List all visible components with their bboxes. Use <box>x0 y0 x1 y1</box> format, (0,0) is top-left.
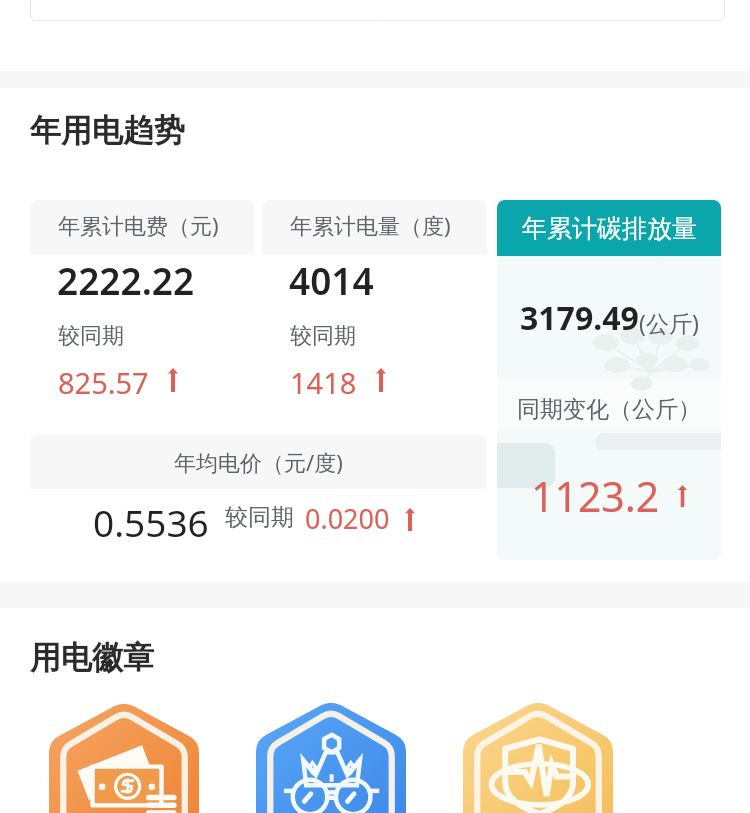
staticText: 同期变化（公斤） <box>517 395 701 424</box>
button[interactable]: 年累计电量（度) <box>262 200 487 427</box>
staticText: 较同期 <box>58 322 124 350</box>
staticText: 年累计电费（元) <box>58 210 219 240</box>
button[interactable]: 年累计碳排放量 <box>497 200 721 560</box>
staticText: 较同期 <box>290 322 356 350</box>
staticText: 1123.2 <box>531 468 660 524</box>
button[interactable]: 年累计电费（元) <box>30 200 254 427</box>
staticText: 2222.22 <box>57 255 195 305</box>
staticText: 825.57 <box>58 363 149 402</box>
staticText: (公斤) <box>639 307 699 338</box>
staticText: 年用电趋势 <box>30 111 185 150</box>
staticText: 年均电价（元/度) <box>174 447 343 477</box>
staticText: 用电徽章 <box>30 638 154 677</box>
staticText: 1418 <box>290 363 357 402</box>
staticText: 0.5536 <box>93 497 209 547</box>
button[interactable]: 电费徽章 Electricity bill badge <box>49 701 199 813</box>
button[interactable]: 年均电价（元/度) <box>30 435 487 563</box>
button[interactable]: 用电健康徽章 Energy health badge <box>463 700 613 813</box>
staticText: 4014 <box>289 255 374 305</box>
staticText: 年累计碳排放量 <box>522 213 697 244</box>
staticText: 较同期 <box>225 503 294 532</box>
staticText: 年累计电量（度) <box>290 210 451 240</box>
button[interactable]: 用电达人徽章 Power user badge <box>256 700 406 813</box>
staticText: 3179.49 <box>520 296 639 340</box>
staticText: 0.0200 <box>305 500 390 537</box>
